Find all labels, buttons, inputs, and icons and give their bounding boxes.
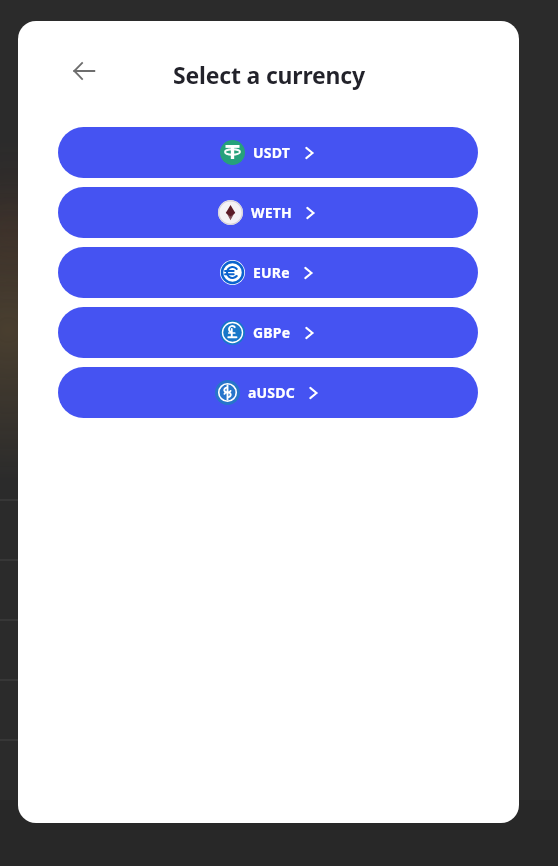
staticText: aUSDC — [248, 383, 295, 402]
staticText: GBPe — [253, 323, 291, 342]
button[interactable]: WETH — [58, 187, 478, 238]
staticText: Select a currency — [173, 59, 365, 90]
button[interactable]: Back — [62, 49, 106, 93]
button[interactable]: USDT — [58, 127, 478, 178]
button[interactable]: EURe — [58, 247, 478, 298]
staticText: EURe — [253, 263, 290, 282]
staticText: WETH — [251, 203, 292, 222]
button[interactable]: aUSDC — [58, 367, 478, 418]
button[interactable]: GBPe — [58, 307, 478, 358]
staticText: USDT — [253, 143, 291, 162]
